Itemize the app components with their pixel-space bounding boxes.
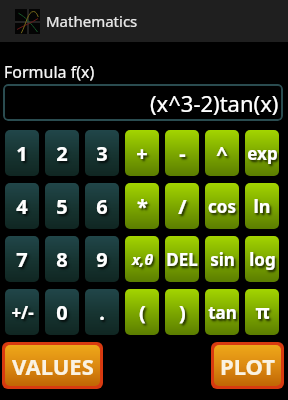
staticText: log (249, 248, 276, 271)
button[interactable]: ) (165, 289, 199, 335)
staticText: cos (208, 195, 236, 218)
button[interactable]: 3 (85, 130, 119, 176)
staticText: x,θ (132, 249, 153, 269)
staticText: 4 (16, 193, 28, 220)
staticText: - (179, 140, 186, 167)
button[interactable]: . (85, 289, 119, 335)
button[interactable]: π (245, 289, 279, 335)
staticText: + (136, 140, 148, 167)
staticText: / (178, 193, 187, 220)
staticText: ^ (216, 140, 228, 167)
button[interactable]: 9 (85, 236, 119, 282)
staticText: Mathematics (46, 11, 138, 31)
button[interactable]: tan (205, 289, 239, 335)
button[interactable]: DEL (165, 236, 199, 282)
staticText: 3 (96, 140, 108, 167)
button[interactable]: PLOT (214, 345, 281, 386)
staticText: tan (208, 301, 237, 324)
staticText: sin (210, 248, 235, 271)
button[interactable]: + (125, 130, 159, 176)
staticText: ln (253, 194, 271, 219)
staticText: 5 (56, 193, 68, 220)
staticText: +/- (11, 301, 34, 324)
staticText: ( (139, 299, 146, 326)
button[interactable]: 8 (45, 236, 79, 282)
button[interactable]: / (165, 183, 199, 229)
staticText: 2 (56, 140, 68, 167)
button[interactable]: exp (245, 130, 279, 176)
staticText: * (137, 193, 148, 220)
staticText: (x^3-2)tan(x) (150, 88, 279, 118)
button[interactable]: * (125, 183, 159, 229)
staticText: 9 (96, 246, 108, 273)
button[interactable]: (x^3-2)tan(x) (3, 84, 283, 121)
button[interactable]: 7 (5, 236, 39, 282)
button[interactable]: log (245, 236, 279, 282)
staticText: PLOT (220, 351, 275, 381)
other: App icon (15, 9, 40, 34)
staticText: exp (247, 142, 278, 165)
button[interactable]: 4 (5, 183, 39, 229)
button[interactable]: 1 (5, 130, 39, 176)
button[interactable]: cos (205, 183, 239, 229)
staticText: 0 (56, 299, 68, 326)
staticText: DEL (166, 248, 198, 271)
button[interactable]: 2 (45, 130, 79, 176)
staticText: ) (179, 299, 186, 326)
staticText: 1 (16, 140, 28, 167)
button[interactable]: 0 (45, 289, 79, 335)
button[interactable]: x,θ (125, 236, 159, 282)
button[interactable]: sin (205, 236, 239, 282)
button[interactable]: 6 (85, 183, 119, 229)
button[interactable]: +/- (5, 289, 39, 335)
staticText: 7 (16, 246, 28, 273)
staticText: . (99, 299, 105, 326)
button[interactable]: ^ (205, 130, 239, 176)
button[interactable]: 5 (45, 183, 79, 229)
button[interactable]: - (165, 130, 199, 176)
staticText: 8 (56, 246, 68, 273)
staticText: VALUES (12, 351, 94, 381)
staticText: Formula f(x) (4, 61, 95, 83)
staticText: 6 (96, 193, 108, 220)
button[interactable]: ( (125, 289, 159, 335)
staticText: π (255, 299, 270, 325)
button[interactable]: ln (245, 183, 279, 229)
button[interactable]: VALUES (5, 345, 100, 386)
